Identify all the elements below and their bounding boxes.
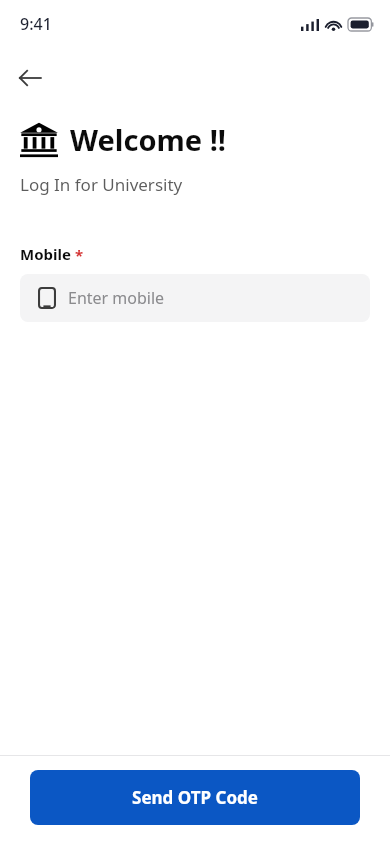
staticText: * [75, 245, 84, 265]
staticText: Welcome !! [70, 120, 226, 159]
staticText: 9:41 [20, 13, 52, 35]
staticText: Send OTP Code [132, 786, 258, 809]
button[interactable]: Send OTP Code [30, 770, 360, 825]
button[interactable]: Enter mobile [20, 274, 370, 322]
staticText: Mobile [20, 244, 71, 264]
staticText: Log In for University [20, 173, 183, 196]
staticText: Enter mobile [68, 287, 165, 309]
button[interactable]: Back [8, 56, 52, 100]
